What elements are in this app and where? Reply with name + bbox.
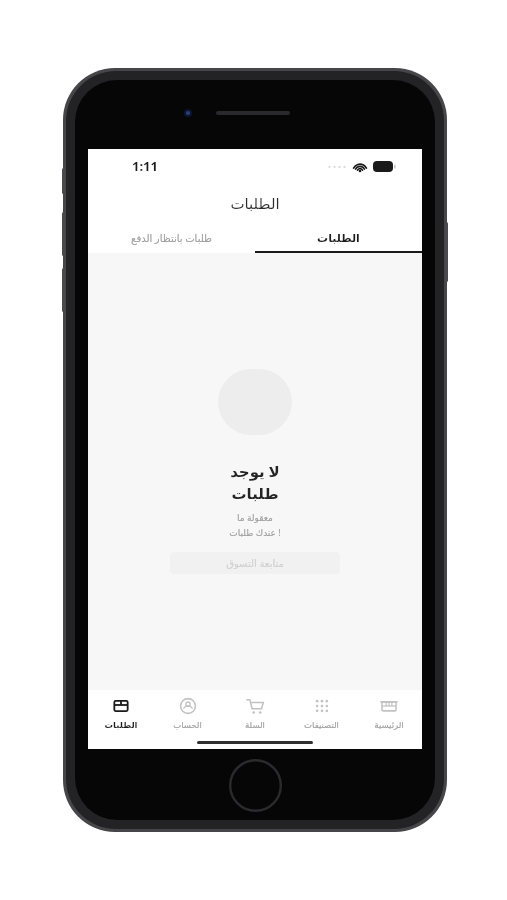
button[interactable]: Orders [88, 690, 154, 736]
staticText: متابعة التسوق [226, 556, 284, 570]
staticText: طلبات بانتظار الدفع [131, 231, 212, 245]
button[interactable]: Categories [288, 690, 355, 736]
staticText: لا يوجد [230, 461, 280, 481]
staticText: الرئيسية [374, 720, 404, 730]
staticText: 1:11 [132, 157, 158, 175]
staticText: الطلبات [104, 720, 138, 730]
staticText: عندك طلبات ! [229, 526, 281, 538]
button[interactable]: متابعة التسوق [170, 552, 340, 574]
button[interactable]: Account [154, 690, 221, 736]
button[interactable]: Cart [221, 690, 288, 736]
button[interactable]: الطلبات [255, 223, 422, 253]
staticText: طلبات [231, 485, 279, 502]
staticText: معقولة ما [237, 511, 273, 523]
button[interactable]: طلبات بانتظار الدفع [88, 223, 255, 253]
button[interactable]: Home [355, 690, 422, 736]
staticText: الحساب [173, 720, 202, 730]
staticText: التصنيفات [304, 720, 339, 730]
staticText: الطلبات [317, 232, 360, 245]
staticText: الطلبات [230, 195, 280, 212]
staticText: السلة [245, 720, 265, 730]
